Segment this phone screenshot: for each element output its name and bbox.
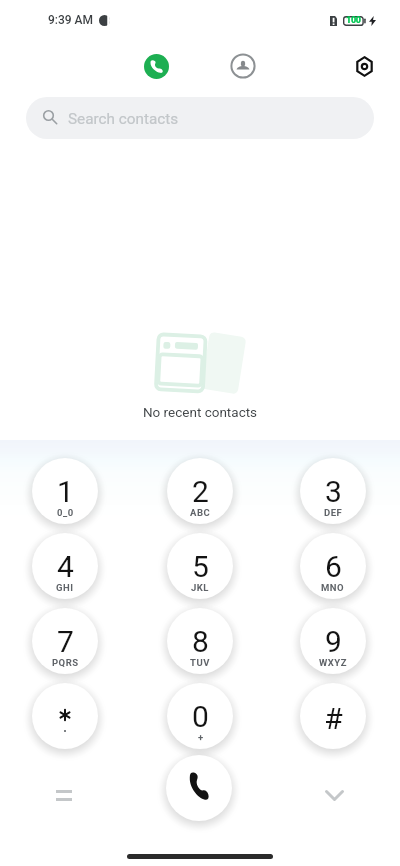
staticText: Search contacts	[68, 110, 179, 128]
button[interactable]	[12, 663, 118, 769]
staticText: 1	[57, 474, 74, 509]
staticText: 6	[325, 549, 342, 584]
button[interactable]: Hide dialpad	[311, 772, 357, 818]
button[interactable]: 8	[147, 588, 253, 694]
button[interactable]: Call	[146, 735, 252, 841]
button[interactable]: 0	[147, 663, 253, 769]
staticText: DEF	[324, 507, 343, 518]
button[interactable]: Dialpad	[138, 48, 174, 84]
staticText: 0	[192, 699, 209, 734]
button[interactable]: 2	[147, 438, 253, 544]
staticText: #	[324, 701, 343, 736]
staticText: 5	[192, 549, 209, 584]
staticText: 100	[346, 15, 361, 26]
staticText: 7	[57, 624, 74, 659]
staticText: WXYZ	[319, 657, 347, 668]
staticText: ABC	[190, 507, 211, 518]
button[interactable]: 3	[280, 438, 386, 544]
button[interactable]: 4	[12, 513, 118, 619]
button[interactable]: Contacts	[225, 48, 261, 84]
button[interactable]: 5	[147, 513, 253, 619]
staticText: No recent contacts	[0, 404, 400, 420]
button[interactable]: 6	[280, 513, 386, 619]
staticText: 4	[57, 549, 74, 584]
button[interactable]: Settings	[346, 48, 382, 84]
staticText: 3	[325, 474, 342, 509]
button[interactable]: 1	[12, 438, 118, 544]
staticText: 0_0	[57, 507, 74, 518]
staticText: GHI	[56, 582, 74, 593]
staticText: MNO	[321, 582, 345, 593]
button[interactable]: Pause	[41, 772, 87, 818]
button[interactable]: #	[280, 663, 386, 769]
button[interactable]: 9	[280, 588, 386, 694]
staticText: 2	[192, 474, 209, 509]
staticText: 9	[325, 624, 342, 659]
staticText: 8	[192, 624, 209, 659]
staticText: JKL	[191, 582, 209, 593]
staticText: 9:39 AM	[48, 13, 94, 27]
staticText: PQRS	[52, 657, 79, 668]
staticText: TUV	[190, 657, 210, 668]
button[interactable]: 7	[12, 588, 118, 694]
button[interactable]: Search contacts	[26, 97, 374, 139]
staticText: +	[198, 732, 204, 743]
